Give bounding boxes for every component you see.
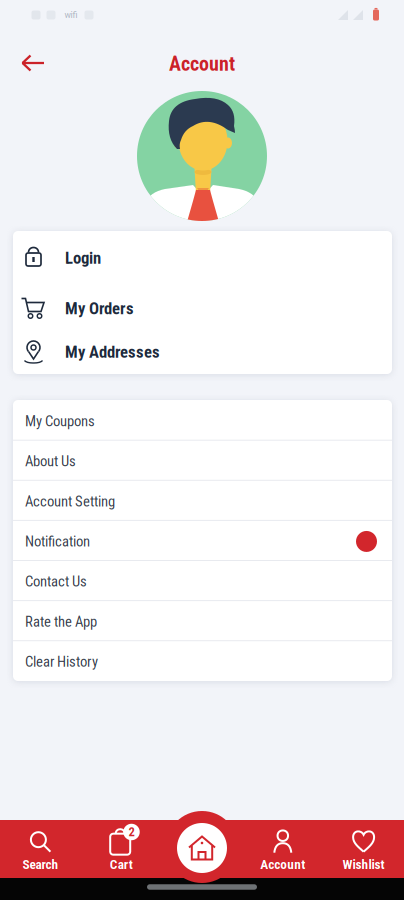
staticText: 2	[128, 825, 134, 839]
staticText: Clear History	[25, 653, 98, 670]
button[interactable]: Account Setting	[13, 481, 392, 521]
staticText: About Us	[25, 453, 76, 470]
button[interactable]: Clear History	[13, 642, 392, 682]
staticText: Contact Us	[25, 573, 87, 590]
button[interactable]: About Us	[13, 441, 392, 481]
staticText: wifi	[64, 10, 77, 20]
button[interactable]: Search	[2, 823, 78, 877]
staticText: Account	[169, 52, 235, 76]
staticText: Login	[65, 248, 101, 268]
button[interactable]: Back	[17, 48, 51, 78]
button[interactable]: Cart	[83, 823, 159, 877]
button[interactable]: My Coupons	[13, 401, 392, 441]
staticText: Wishlist	[343, 857, 385, 872]
staticText: My Orders	[65, 299, 134, 318]
button[interactable]: Account	[245, 823, 321, 877]
button[interactable]: Contact Us	[13, 561, 392, 602]
button[interactable]: My Orders	[13, 285, 392, 332]
staticText: My Addresses	[65, 342, 160, 362]
button[interactable]: Home	[177, 823, 227, 873]
staticText: Account	[260, 857, 305, 872]
staticText: Notification	[25, 533, 90, 550]
staticText: My Coupons	[25, 413, 95, 430]
staticText: Search	[22, 857, 58, 872]
staticText: Cart	[110, 857, 133, 872]
button[interactable]: Notification	[13, 521, 392, 562]
button[interactable]: My Addresses	[13, 328, 392, 376]
staticText: Account Setting	[25, 493, 115, 510]
button[interactable]: Wishlist	[326, 823, 402, 877]
button[interactable]: Login	[13, 234, 392, 282]
staticText: Rate the App	[25, 613, 97, 630]
button[interactable]: Rate the App	[13, 602, 392, 642]
